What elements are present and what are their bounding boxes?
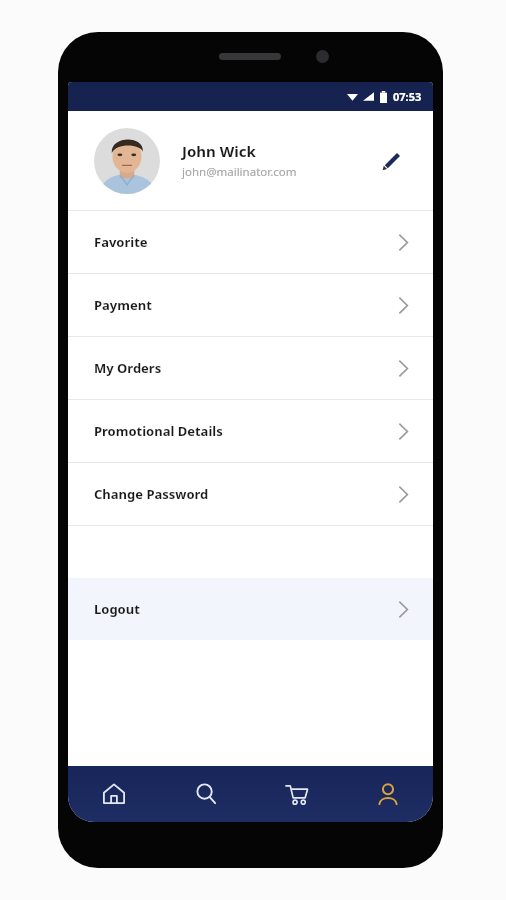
button[interactable]: Edit profile [371, 141, 411, 181]
staticText: John Wick [182, 141, 256, 161]
button[interactable]: Favorite [68, 211, 433, 273]
button[interactable]: Payment [68, 274, 433, 336]
staticText: Logout [94, 600, 398, 618]
button[interactable]: Home [68, 766, 160, 822]
button[interactable]: Profile photo [94, 128, 160, 194]
staticText: 07:53 [393, 89, 422, 104]
button[interactable]: Search [160, 766, 251, 822]
button[interactable]: My Orders [68, 337, 433, 399]
staticText: Payment [94, 296, 398, 314]
staticText: Favorite [94, 233, 398, 251]
button[interactable]: Logout [68, 578, 433, 640]
button[interactable]: Change Password [68, 463, 433, 525]
staticText: Promotional Details [94, 422, 398, 440]
staticText: Change Password [94, 485, 398, 503]
button[interactable]: Promotional Details [68, 400, 433, 462]
button[interactable]: Profile [342, 766, 433, 822]
button[interactable]: Cart [251, 766, 342, 822]
staticText: john@mailinator.com [182, 164, 297, 180]
staticText: My Orders [94, 359, 398, 377]
